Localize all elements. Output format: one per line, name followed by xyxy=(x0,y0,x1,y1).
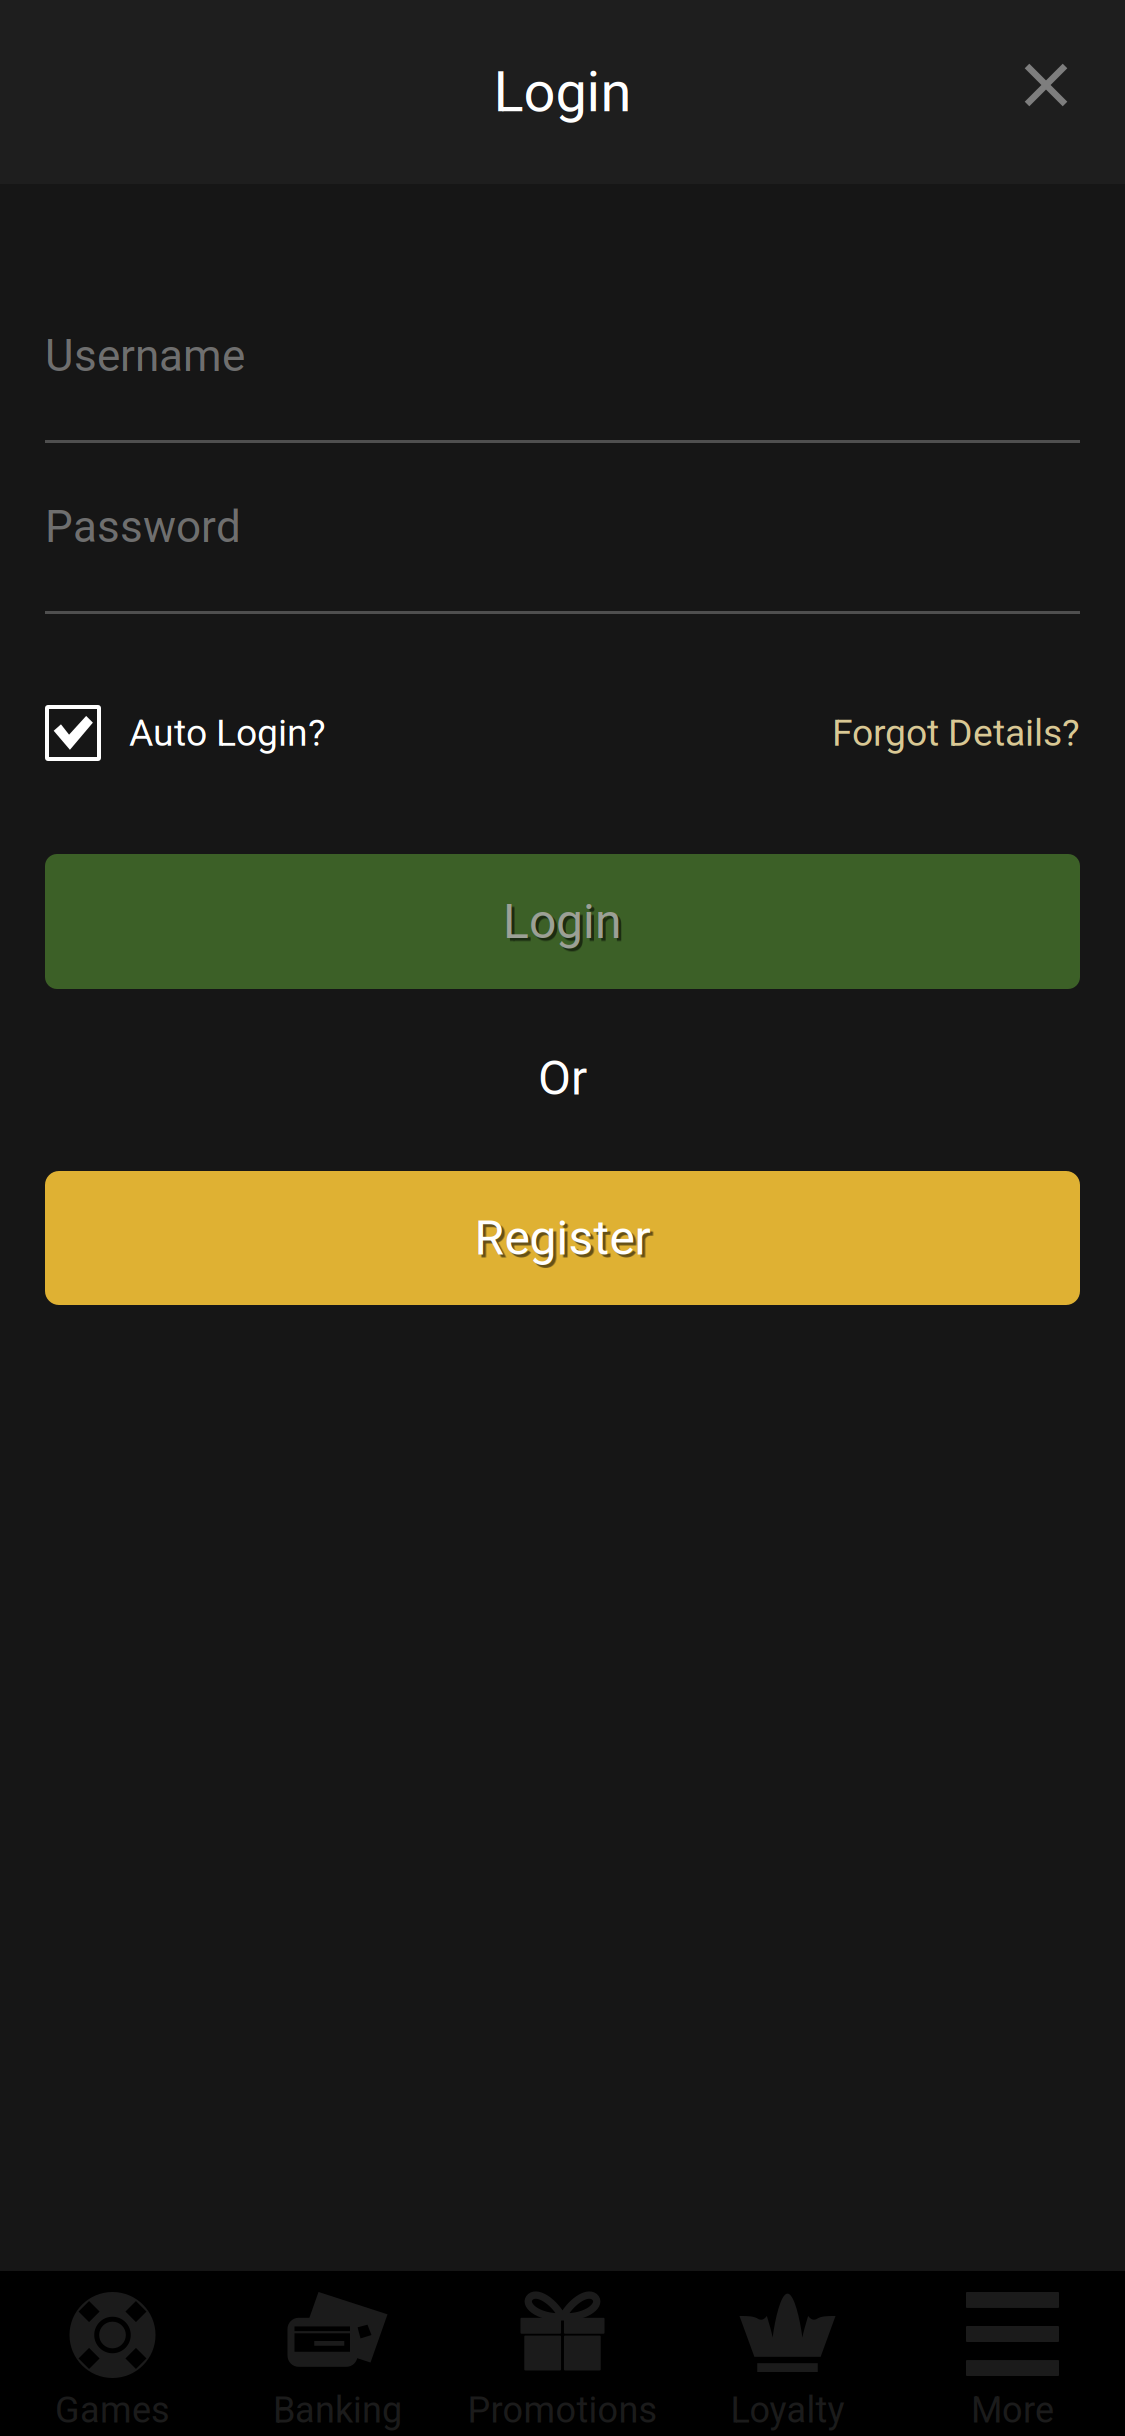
staticText: Password xyxy=(45,501,241,553)
staticText: More xyxy=(971,2389,1054,2431)
button[interactable]: Login xyxy=(45,854,1080,989)
staticText: Auto Login? xyxy=(129,711,326,755)
button[interactable]: Promotions xyxy=(450,2271,675,2436)
button[interactable]: Games xyxy=(0,2271,225,2436)
staticText: Promotions xyxy=(467,2389,657,2431)
button[interactable]: Banking xyxy=(225,2271,450,2436)
staticText: Register xyxy=(474,1210,650,1266)
staticText: Loyalty xyxy=(730,2389,844,2431)
button[interactable]: Close xyxy=(983,37,1125,147)
staticText: Login xyxy=(503,893,622,950)
staticText: Games xyxy=(55,2389,170,2431)
button[interactable]: Register xyxy=(45,1171,1080,1305)
button[interactable]: Forgot Details? xyxy=(832,705,1080,761)
staticText: Or xyxy=(538,1050,587,1106)
staticText: Forgot Details? xyxy=(832,711,1080,755)
button[interactable]: Auto Login? xyxy=(45,705,326,761)
staticText: Username xyxy=(45,330,245,382)
staticText: Banking xyxy=(273,2389,402,2431)
staticText: Login xyxy=(493,59,631,125)
button[interactable]: More xyxy=(900,2271,1125,2436)
button[interactable]: Loyalty xyxy=(675,2271,900,2436)
